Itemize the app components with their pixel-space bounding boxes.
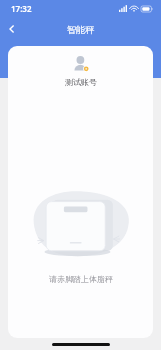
button[interactable]: Back — [0, 17, 24, 41]
staticText: 17:32 — [11, 3, 32, 14]
staticText: 请赤脚踏上体脂秤 — [49, 274, 113, 284]
staticText: 智能秤 — [67, 24, 94, 35]
button[interactable]: 测试账号 — [55, 52, 107, 89]
staticText: 测试账号 — [65, 77, 97, 87]
